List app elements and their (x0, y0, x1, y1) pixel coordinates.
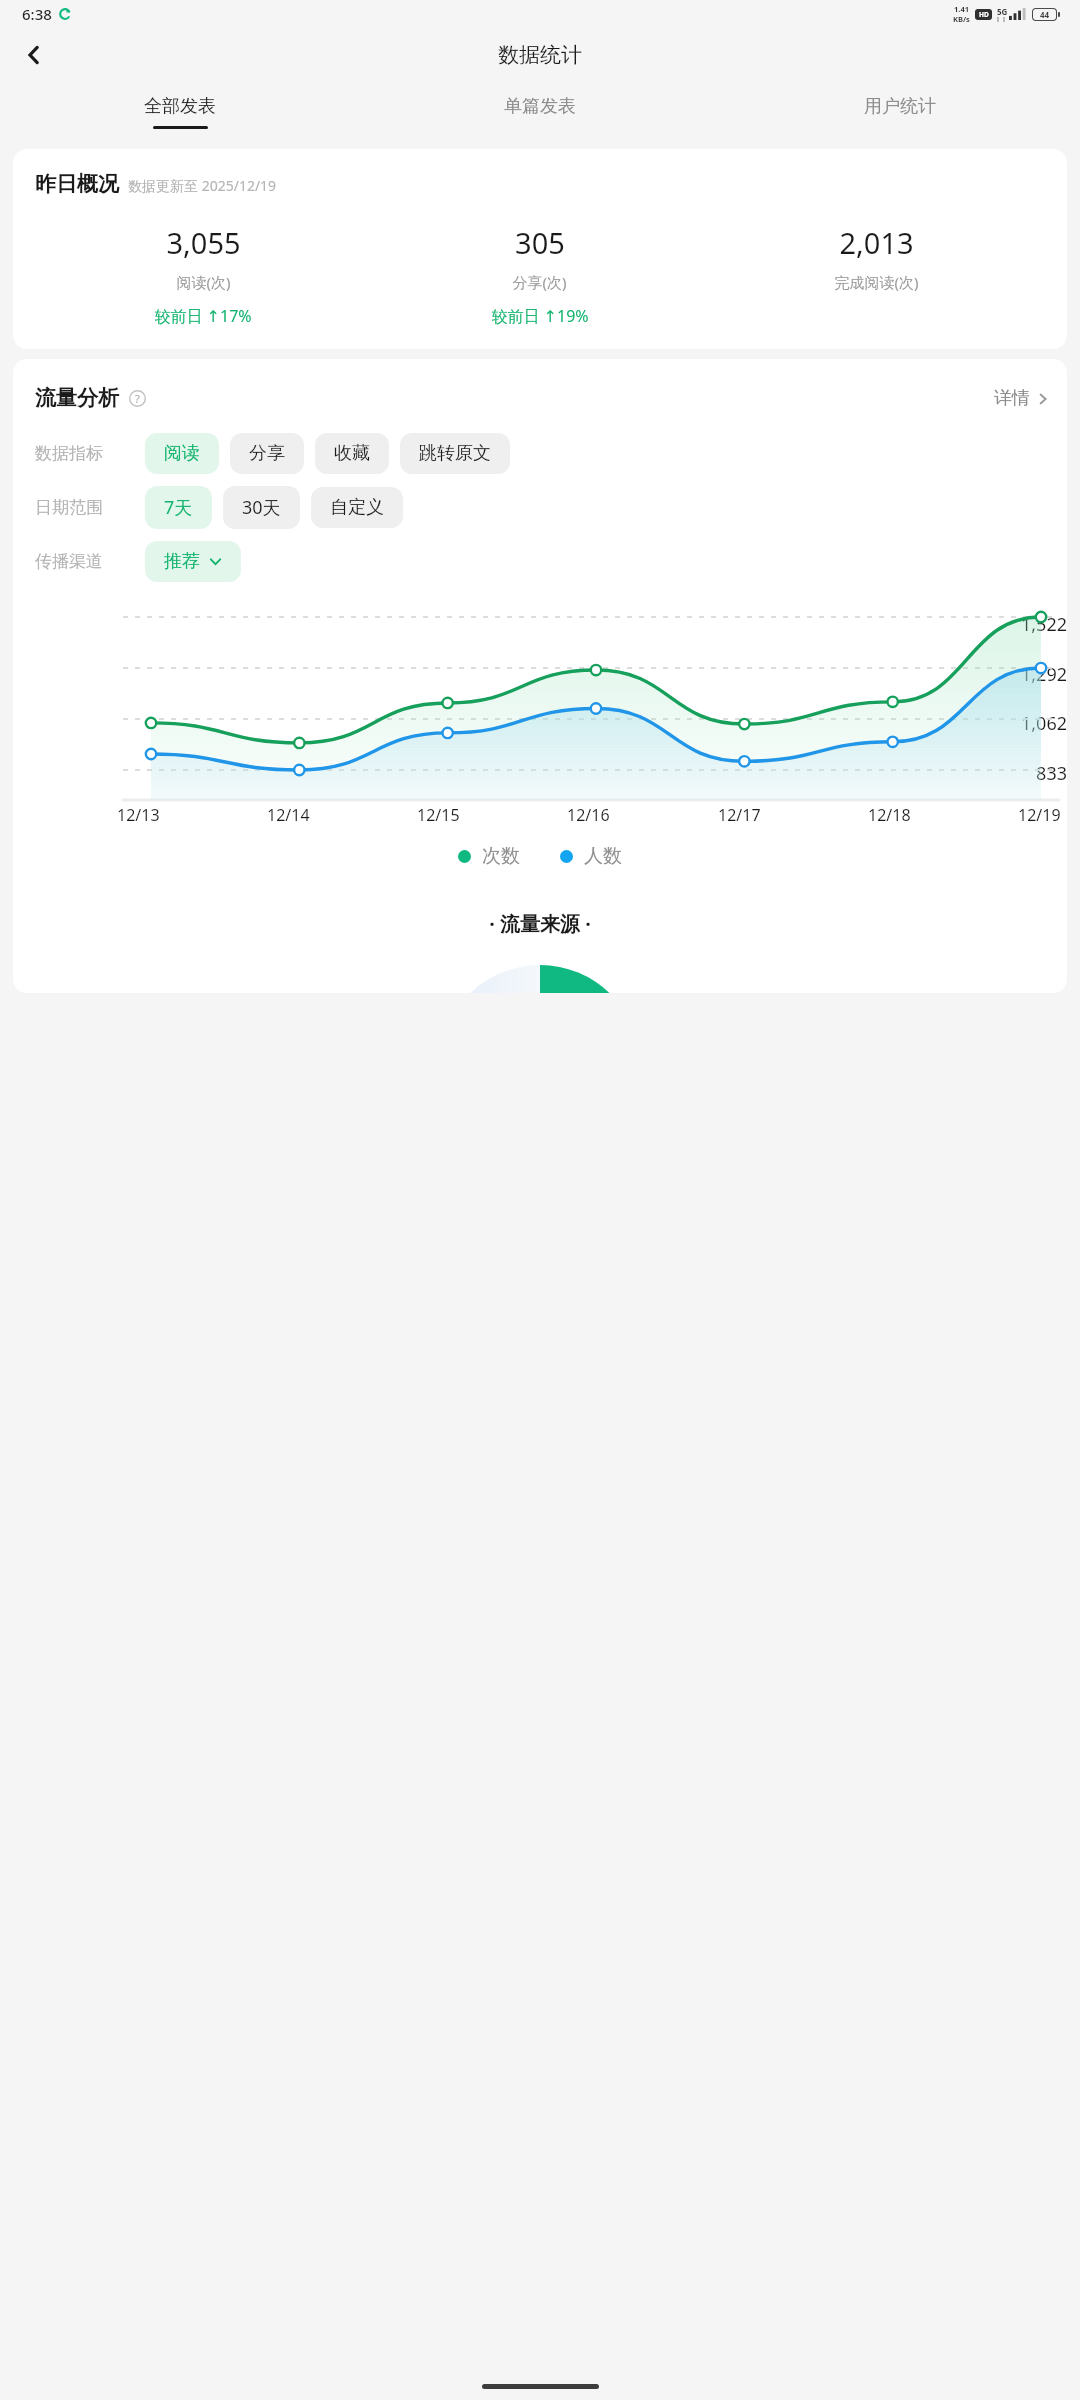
staticText: 推荐 (164, 550, 200, 573)
staticText: 阅读 (164, 442, 200, 465)
staticText: 日期范围 (35, 497, 135, 518)
staticText: 12/17 (718, 804, 761, 826)
staticText: 用户统计 (864, 95, 936, 118)
staticText: 12/14 (267, 804, 310, 826)
button[interactable]: 单篇发表 (360, 83, 720, 141)
staticText: 1,292 (989, 662, 1067, 687)
staticText: 自定义 (330, 496, 384, 519)
staticText: 1,062 (989, 711, 1067, 736)
staticText: 人数 (584, 844, 622, 868)
staticText: KB/s (953, 14, 970, 24)
button[interactable]: 阅读 (145, 433, 219, 474)
staticText: 较前日 ↑19% (491, 305, 589, 327)
staticText: 数据指标 (35, 443, 135, 464)
staticText: 7天 (164, 495, 193, 520)
staticText: 12/15 (417, 804, 460, 826)
button[interactable]: 详情 (994, 387, 1049, 410)
staticText: 44 (1040, 9, 1050, 20)
staticText: HD (979, 10, 989, 19)
staticText: 1,522 (989, 612, 1067, 637)
button[interactable]: 用户统计 (720, 83, 1080, 141)
button[interactable]: 分享 (230, 433, 304, 474)
staticText: 流量分析 (35, 385, 119, 411)
button[interactable]: 30天 (223, 486, 300, 529)
staticText: 12/19 (1018, 804, 1061, 826)
staticText: 12/13 (117, 804, 160, 826)
staticText: 分享 (249, 442, 285, 465)
staticText: 全部发表 (144, 95, 216, 118)
staticText: · 流量来源 · (13, 910, 1067, 937)
button[interactable]: 推荐 (145, 541, 241, 582)
staticText: 305 (515, 223, 565, 262)
button[interactable]: 自定义 (311, 487, 403, 528)
staticText: 传播渠道 (35, 551, 135, 572)
button[interactable]: 跳转原文 (400, 433, 510, 474)
staticText: 详情 (994, 387, 1030, 410)
staticText: 较前日 ↑17% (154, 305, 252, 327)
staticText: 12/18 (868, 804, 911, 826)
staticText: 完成阅读(次) (834, 272, 919, 292)
button[interactable]: Back (10, 31, 58, 79)
staticText: 收藏 (334, 442, 370, 465)
staticText: 单篇发表 (504, 95, 576, 118)
staticText: 30天 (242, 495, 281, 520)
staticText: 12/16 (567, 804, 610, 826)
staticText: 数据更新至 2025/12/19 (128, 176, 277, 195)
staticText: 分享(次) (512, 272, 567, 292)
staticText: 6:38 (22, 4, 52, 24)
button[interactable]: Help (126, 387, 148, 409)
staticText: 2,013 (839, 223, 914, 262)
staticText: 昨日概况 (35, 171, 119, 197)
staticText: 833 (989, 761, 1067, 786)
staticText: 3,055 (166, 223, 241, 262)
staticText: 阅读(次) (176, 272, 231, 292)
staticText: 1.41 (954, 4, 969, 14)
button[interactable]: 人数 (560, 844, 622, 868)
button[interactable]: 收藏 (315, 433, 389, 474)
button[interactable]: 7天 (145, 486, 212, 529)
button[interactable]: 昨日概况 (13, 149, 1067, 349)
button[interactable]: 全部发表 (0, 83, 360, 141)
staticText: 跳转原文 (419, 442, 491, 465)
staticText: ? (135, 391, 140, 406)
staticText: 次数 (482, 844, 520, 868)
button[interactable]: 次数 (458, 844, 520, 868)
staticText: 5G (997, 6, 1008, 17)
staticText: 数据统计 (498, 42, 582, 68)
